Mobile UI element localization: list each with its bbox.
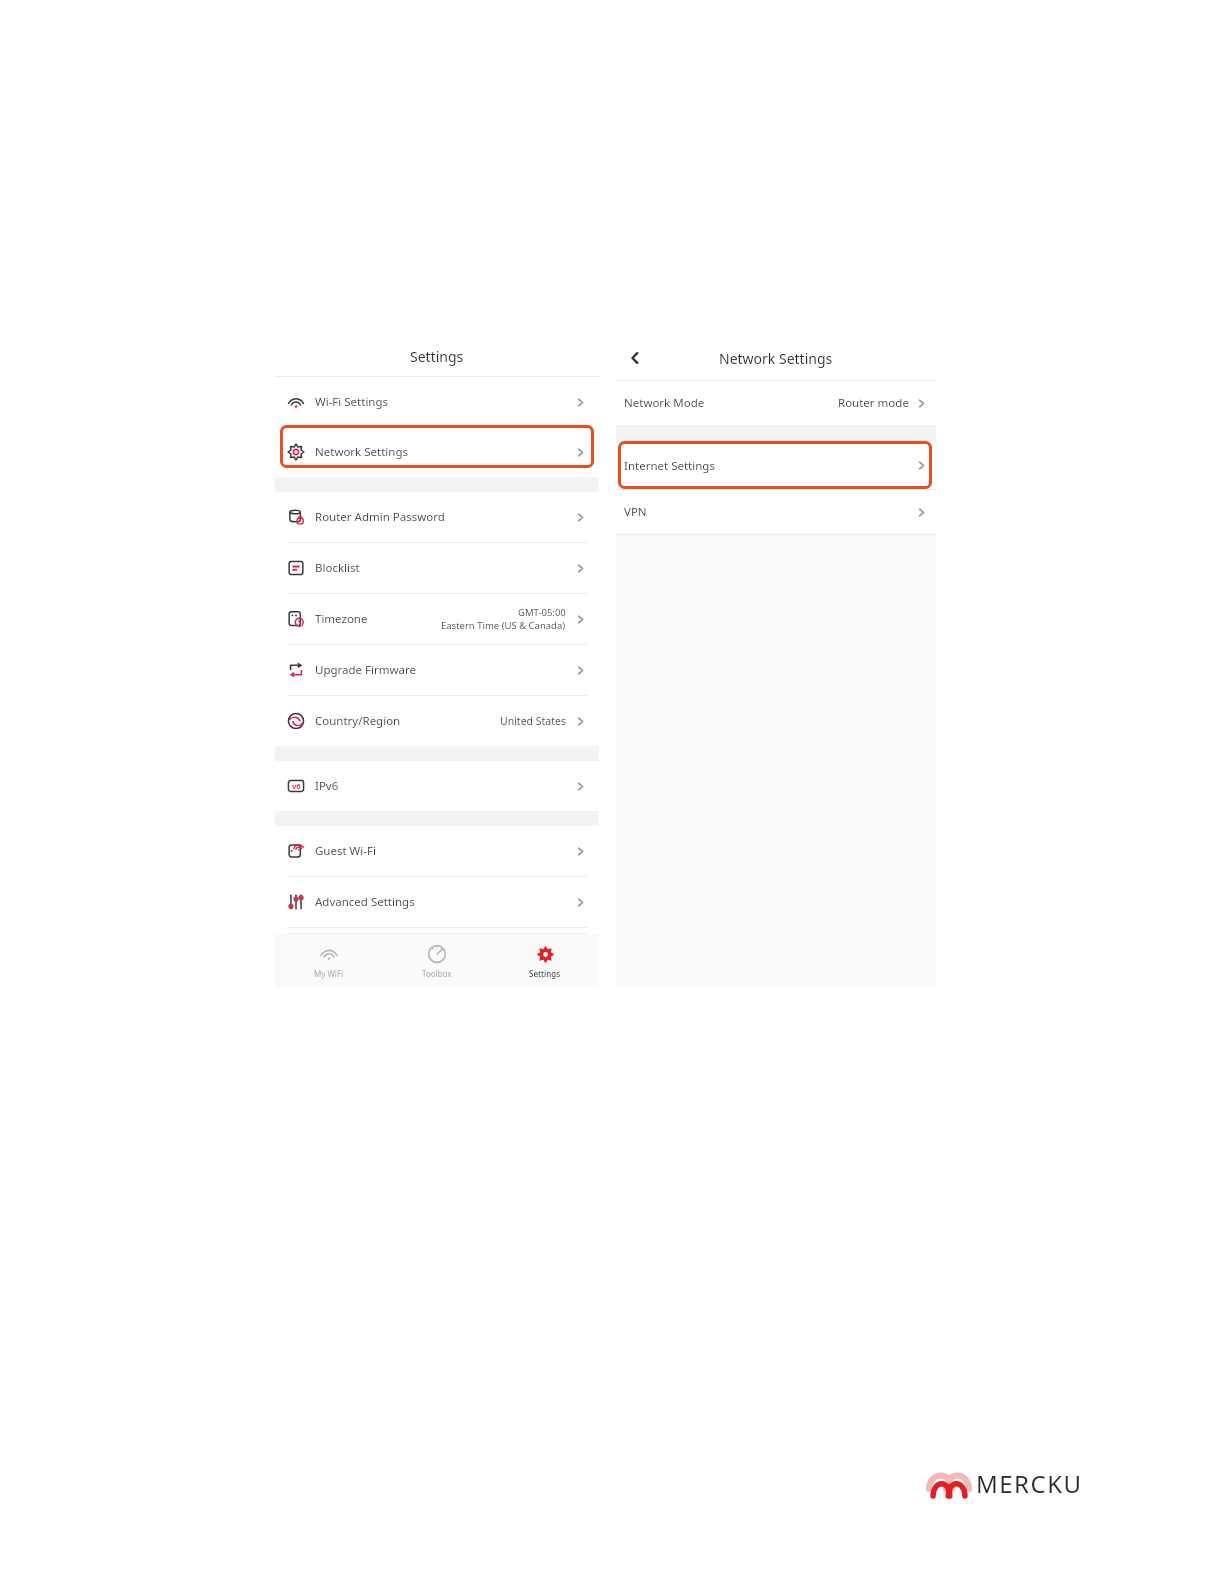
button[interactable]: Advanced Settings [275, 877, 599, 927]
staticText: Router mode [838, 395, 909, 411]
staticText: Network Settings [719, 349, 833, 368]
button[interactable]: Timezone [275, 594, 599, 644]
button[interactable]: Toolbox [383, 934, 491, 988]
button[interactable] [280, 425, 594, 468]
staticText: Blocklist [315, 560, 360, 576]
staticText: GMT-05:00 [518, 606, 566, 619]
staticText: Upgrade Firmware [315, 662, 417, 678]
button[interactable]: Blocklist [275, 543, 599, 593]
button[interactable]: v6 [275, 761, 599, 811]
button[interactable]: Network Settings [275, 427, 599, 477]
button[interactable]: Upgrade Firmware [275, 645, 599, 695]
button[interactable]: Wi-Fi Settings [275, 377, 599, 427]
staticText: IPv6 [315, 778, 339, 794]
staticText: VPN [624, 504, 647, 520]
staticText: Country/Region [315, 713, 401, 729]
button[interactable] [618, 441, 932, 489]
staticText: Network Settings [315, 444, 409, 460]
staticText: My WiFi [314, 968, 344, 979]
button[interactable]: Back [622, 345, 648, 371]
staticText: Advanced Settings [315, 894, 415, 910]
staticText: United States [500, 714, 566, 728]
staticText: Internet Settings [624, 458, 715, 474]
button[interactable]: Network Mode [616, 381, 936, 425]
staticText: Settings [529, 968, 561, 979]
staticText: Network Mode [624, 395, 705, 411]
staticText: Toolbox [422, 968, 452, 979]
staticText: Eastern Time (US & Canada) [441, 619, 566, 632]
button[interactable]: VPN [616, 490, 936, 534]
staticText: Timezone [315, 611, 368, 627]
button[interactable]: Internet Settings [616, 442, 936, 489]
staticText: Router Admin Password [315, 509, 445, 525]
staticText: Wi-Fi Settings [315, 394, 389, 410]
button[interactable]: Settings [491, 934, 599, 988]
staticText: Settings [410, 347, 464, 366]
button[interactable]: Country/Region [275, 696, 599, 746]
button[interactable]: My WiFi [275, 934, 383, 988]
button[interactable]: Guest Wi-Fi [275, 826, 599, 876]
staticText: v6 [292, 781, 301, 791]
button[interactable]: Router Admin Password [275, 492, 599, 542]
staticText: Guest Wi-Fi [315, 843, 376, 859]
staticText: MERCKU [976, 1467, 1083, 1500]
